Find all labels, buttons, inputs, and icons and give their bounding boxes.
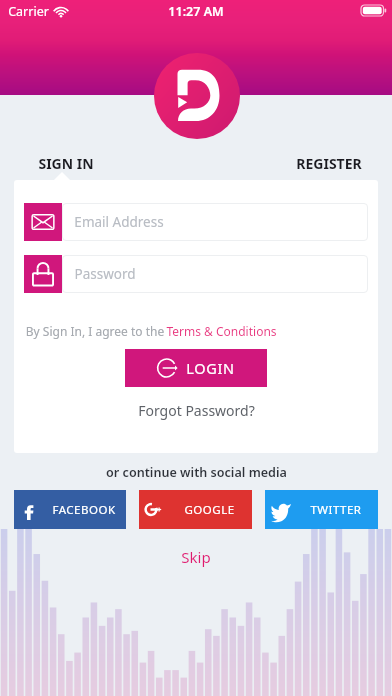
button[interactable]: Password — [62, 255, 368, 293]
staticText: SIGN IN — [38, 154, 94, 173]
staticText: LOGIN — [186, 358, 235, 378]
staticText: REGISTER — [296, 154, 362, 173]
button[interactable]: GOOGLE — [139, 490, 252, 529]
staticText: Carrier — [8, 3, 49, 20]
button[interactable]: Skip — [177, 543, 215, 571]
button[interactable]: TWITTER — [265, 490, 378, 529]
staticText: 11:27 AM — [168, 3, 224, 20]
staticText: TWITTER — [310, 502, 362, 518]
staticText: or continue with social media — [106, 464, 287, 481]
button[interactable]: Terms & Conditions — [166, 323, 277, 339]
staticText: Password — [74, 265, 136, 283]
button[interactable]: SIGN IN — [14, 146, 134, 180]
staticText: By Sign In, I agree to the — [24, 323, 166, 339]
staticText: GOOGLE — [184, 502, 235, 518]
staticText: Email Address — [74, 213, 164, 231]
button[interactable]: FACEBOOK — [14, 490, 126, 529]
staticText: FACEBOOK — [52, 502, 116, 518]
button[interactable]: REGISTER — [258, 146, 378, 180]
staticText: Terms & Conditions — [166, 323, 277, 339]
staticText: Skip — [181, 547, 211, 567]
button[interactable]: Email Address — [62, 203, 368, 241]
staticText: Forgot Password? — [138, 401, 255, 420]
button[interactable]: LOGIN — [125, 349, 267, 387]
button[interactable]: Forgot Password? — [138, 401, 255, 420]
